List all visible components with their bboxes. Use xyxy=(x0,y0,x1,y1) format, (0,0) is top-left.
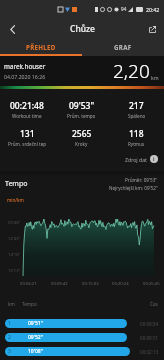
staticText: Čas xyxy=(150,301,158,307)
staticText: 16'13" xyxy=(8,268,21,274)
staticText: Průměr: 09'53" xyxy=(125,177,158,183)
staticText: 09'51" xyxy=(28,320,43,327)
staticText: 1 xyxy=(8,320,11,327)
staticText: 10'08" xyxy=(28,348,43,355)
button[interactable]: Zdroj dat xyxy=(123,153,160,165)
staticText: km xyxy=(8,301,15,307)
staticText: 3 xyxy=(8,348,11,355)
button[interactable]: 2 xyxy=(5,333,159,342)
staticText: Nejrychlejší km: 09'52" xyxy=(109,185,158,191)
staticText: Kroky xyxy=(75,141,88,147)
staticText: Workout time xyxy=(12,113,42,119)
staticText: Spáleno xyxy=(128,113,146,119)
staticText: 00:09:54 xyxy=(140,321,159,327)
staticText: min/km xyxy=(7,197,24,203)
staticText: Zdroj dat xyxy=(125,156,147,163)
button[interactable]: PŘEHLED xyxy=(0,40,82,54)
staticText: 12'43" xyxy=(8,236,21,242)
staticText: Tempo xyxy=(5,179,28,189)
staticText: 2,20 xyxy=(113,58,150,84)
staticText: 09'52" xyxy=(28,334,43,341)
staticText: 00:09:42 xyxy=(51,281,68,287)
staticText: 09'48" xyxy=(8,220,21,226)
staticText: 217 xyxy=(129,100,144,112)
staticText: 04.07.2020 16:26 xyxy=(4,73,46,80)
staticText: Prům. srdeční tep xyxy=(8,141,47,147)
staticText: 00:02:13 xyxy=(140,349,159,355)
staticText: 118 xyxy=(129,128,144,140)
staticText: Rytmus xyxy=(128,141,145,147)
staticText: 131 xyxy=(20,128,35,140)
staticText: Tempo xyxy=(22,301,37,307)
staticText: PŘEHLED xyxy=(26,43,56,51)
button[interactable]: 1 xyxy=(5,319,159,328)
staticText: 2565 xyxy=(72,128,92,140)
staticText: 00:21:48 xyxy=(10,100,44,112)
staticText: 09'53" xyxy=(69,100,95,112)
staticText: 94 xyxy=(121,6,127,12)
button[interactable]: 3 xyxy=(5,347,159,356)
staticText: GRAF xyxy=(114,43,132,51)
staticText: 00:09:51 xyxy=(140,335,159,341)
staticText: 20:42 xyxy=(146,6,160,13)
staticText: km xyxy=(151,74,159,81)
staticText: 00:04:21 xyxy=(20,281,37,287)
staticText: Prům. tempo xyxy=(67,113,96,119)
staticText: i xyxy=(153,156,155,163)
button[interactable]: GRAF xyxy=(82,40,164,54)
staticText: 00:20:24 xyxy=(112,281,129,287)
button[interactable]: Back xyxy=(4,21,20,37)
staticText: 00:15:03 xyxy=(82,281,99,287)
staticText: 14'18" xyxy=(8,252,21,258)
staticText: 2 xyxy=(8,334,11,341)
staticText: marek.houser xyxy=(4,62,46,71)
staticText: Chůze xyxy=(70,23,95,35)
button[interactable]: Open in new window xyxy=(144,21,160,37)
staticText: 00:25:45 xyxy=(143,281,160,287)
